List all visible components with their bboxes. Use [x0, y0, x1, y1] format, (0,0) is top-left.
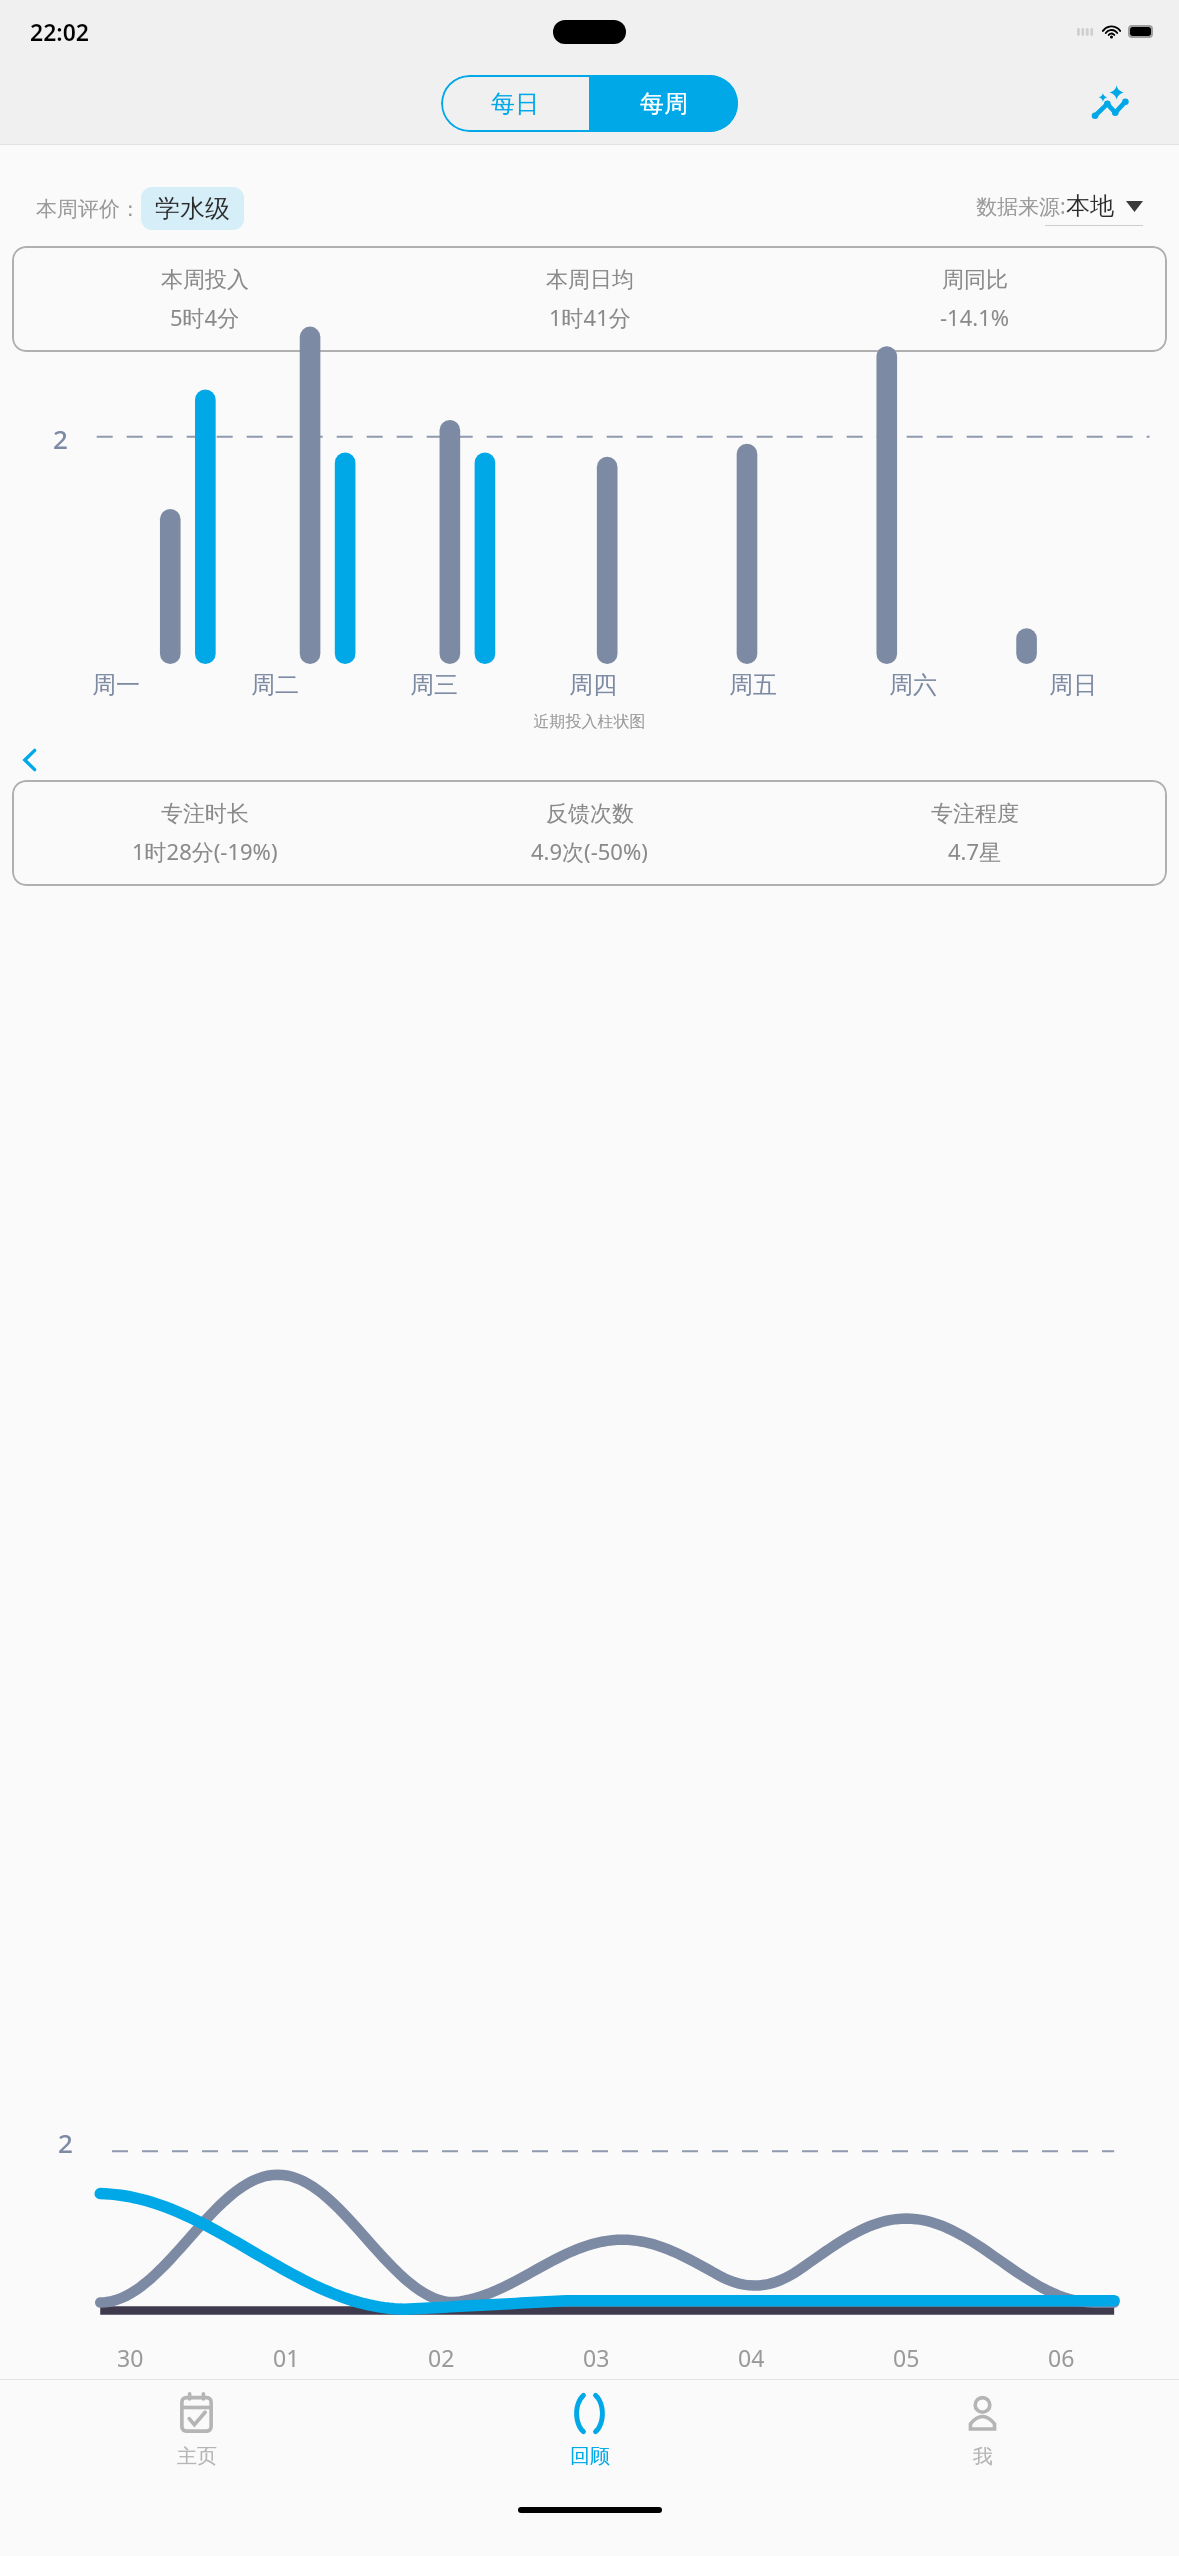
staticText: 数据来源: — [976, 192, 1066, 221]
staticText: 06 — [1048, 2342, 1075, 2373]
staticText: 22:02 — [30, 16, 89, 47]
staticText: 2 — [53, 421, 68, 456]
staticText: 周日 — [1049, 670, 1097, 700]
staticText: 2 — [58, 2125, 73, 2160]
button[interactable]: 专注时长 — [12, 780, 1167, 886]
button[interactable]: 每日 — [441, 75, 589, 132]
staticText: 主页 — [177, 2444, 217, 2469]
staticText: 专注时长 — [161, 800, 249, 828]
staticText: 01 — [273, 2342, 300, 2373]
staticText: 03 — [583, 2342, 610, 2373]
staticText: 05 — [893, 2342, 920, 2373]
staticText: 周二 — [251, 670, 299, 700]
button[interactable]: 我 — [786, 2380, 1179, 2480]
staticText: 30 — [117, 2342, 144, 2373]
button[interactable]: 智能分析 — [1083, 76, 1137, 130]
button[interactable]: 上一页 — [12, 742, 48, 778]
staticText: 近期投入柱状图 — [0, 712, 1179, 732]
button[interactable]: 回顾 — [393, 2380, 786, 2480]
staticText: 1时28分(-19%) — [132, 836, 278, 866]
button[interactable]: 主页 — [0, 2380, 393, 2480]
staticText: 04 — [738, 2342, 765, 2373]
staticText: 4.7星 — [948, 836, 1002, 866]
staticText: 学水级 — [155, 193, 230, 224]
staticText: 专注程度 — [931, 800, 1019, 828]
staticText: -14.1% — [940, 302, 1010, 332]
staticText: 周五 — [729, 670, 777, 700]
staticText: 4.9次(-50%) — [531, 836, 648, 866]
staticText: 反馈次数 — [546, 800, 634, 828]
staticText: 1时41分 — [549, 302, 631, 332]
button[interactable]: 数据来源: — [976, 191, 1143, 221]
button[interactable]: 学水级 — [141, 187, 244, 230]
staticText: 周三 — [410, 670, 458, 700]
button[interactable]: 每周 — [589, 75, 738, 132]
staticText: 每日 — [491, 89, 539, 119]
staticText: 5时4分 — [170, 302, 240, 332]
staticText: 本地 — [1066, 191, 1114, 221]
staticText: 周一 — [92, 670, 140, 700]
staticText: 周同比 — [942, 266, 1008, 294]
staticText: 周六 — [889, 670, 937, 700]
staticText: 回顾 — [570, 2444, 610, 2469]
staticText: 本周评价： — [36, 196, 141, 222]
staticText: 每周 — [640, 89, 688, 119]
staticText: 02 — [428, 2342, 455, 2373]
button[interactable]: 本周投入 — [12, 246, 1167, 352]
staticText: 周四 — [569, 670, 617, 700]
staticText: 本周日均 — [546, 266, 634, 294]
staticText: 本周投入 — [161, 266, 249, 294]
staticText: 我 — [973, 2444, 993, 2469]
